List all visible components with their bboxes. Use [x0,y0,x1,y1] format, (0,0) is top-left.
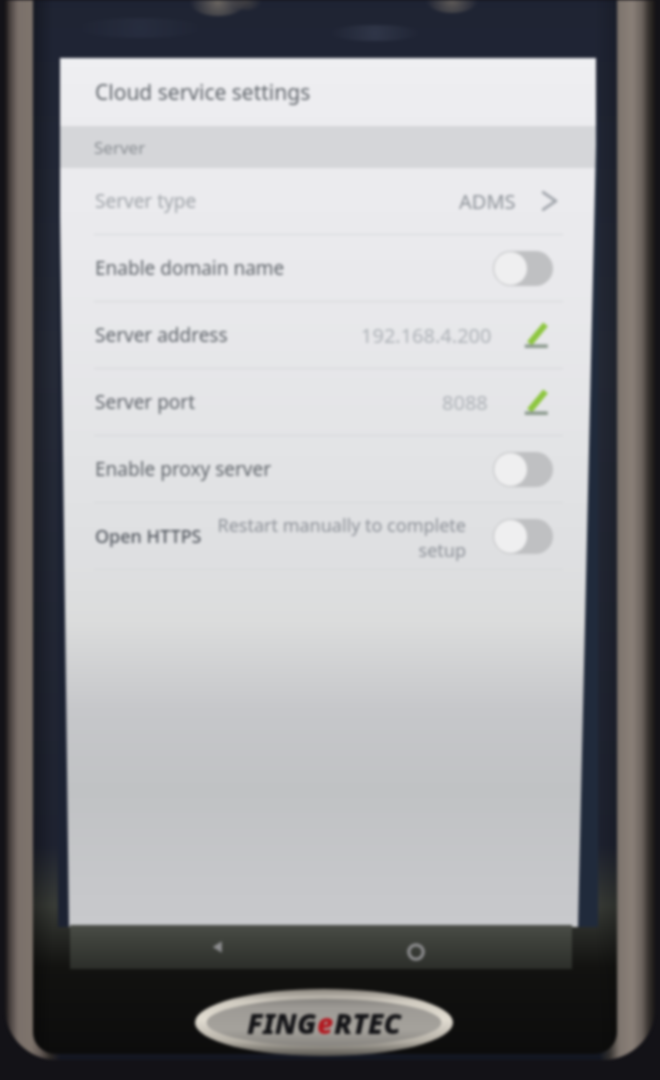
staticText: FING [247,1004,317,1042]
staticText: Enable domain name [95,255,285,281]
button[interactable] [493,519,553,554]
button[interactable]: Edit [522,321,550,349]
staticText: ADMS [459,188,516,215]
button[interactable]: Server type [60,168,596,234]
staticText: Server port [95,389,196,415]
button[interactable]: Open HTTPS [60,503,596,569]
staticText: Server type [95,188,197,214]
staticText: Server [94,136,146,159]
staticText: setup [206,538,466,563]
staticText: 8088 [442,389,488,416]
staticText: Cloud service settings [95,78,311,107]
button[interactable]: Edit [522,388,550,416]
staticText: RTEC [334,1004,402,1042]
staticText: 192.168.4.200 [361,322,492,349]
staticText: Enable proxy server [95,456,272,482]
button[interactable]: Enable domain name [60,235,596,301]
button[interactable] [493,452,553,487]
button[interactable]: Home [404,940,428,964]
staticText: Server address [95,322,228,348]
staticText: e [317,1004,334,1042]
button[interactable]: Server address [60,302,596,368]
button[interactable]: Server port [60,369,596,435]
staticText: Restart manually to complete [206,513,466,538]
button[interactable] [493,251,553,286]
staticText: Open HTTPS [95,524,202,549]
button[interactable]: Enable proxy server [60,436,596,502]
button[interactable]: Back [206,935,230,959]
